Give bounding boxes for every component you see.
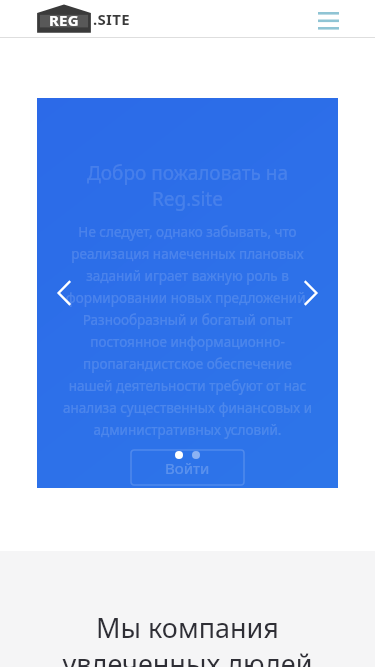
button[interactable]: Войти <box>131 450 244 485</box>
button[interactable]: Previous slide <box>47 276 81 310</box>
button[interactable]: REG <box>36 4 130 34</box>
staticText: Мы компания увлеченных людей <box>44 609 331 667</box>
button[interactable]: Open menu <box>311 2 345 36</box>
button[interactable]: Slide 2 <box>192 451 200 459</box>
staticText: REG <box>49 10 79 30</box>
staticText: Не следует, однако забывать, что реализа… <box>61 223 314 439</box>
staticText: .SITE <box>93 9 130 29</box>
button[interactable]: Next slide <box>294 276 328 310</box>
staticText: Войти <box>165 458 210 478</box>
staticText: Добро пожаловать на Reg.site <box>61 160 314 211</box>
button[interactable]: Slide 1 <box>175 451 183 459</box>
